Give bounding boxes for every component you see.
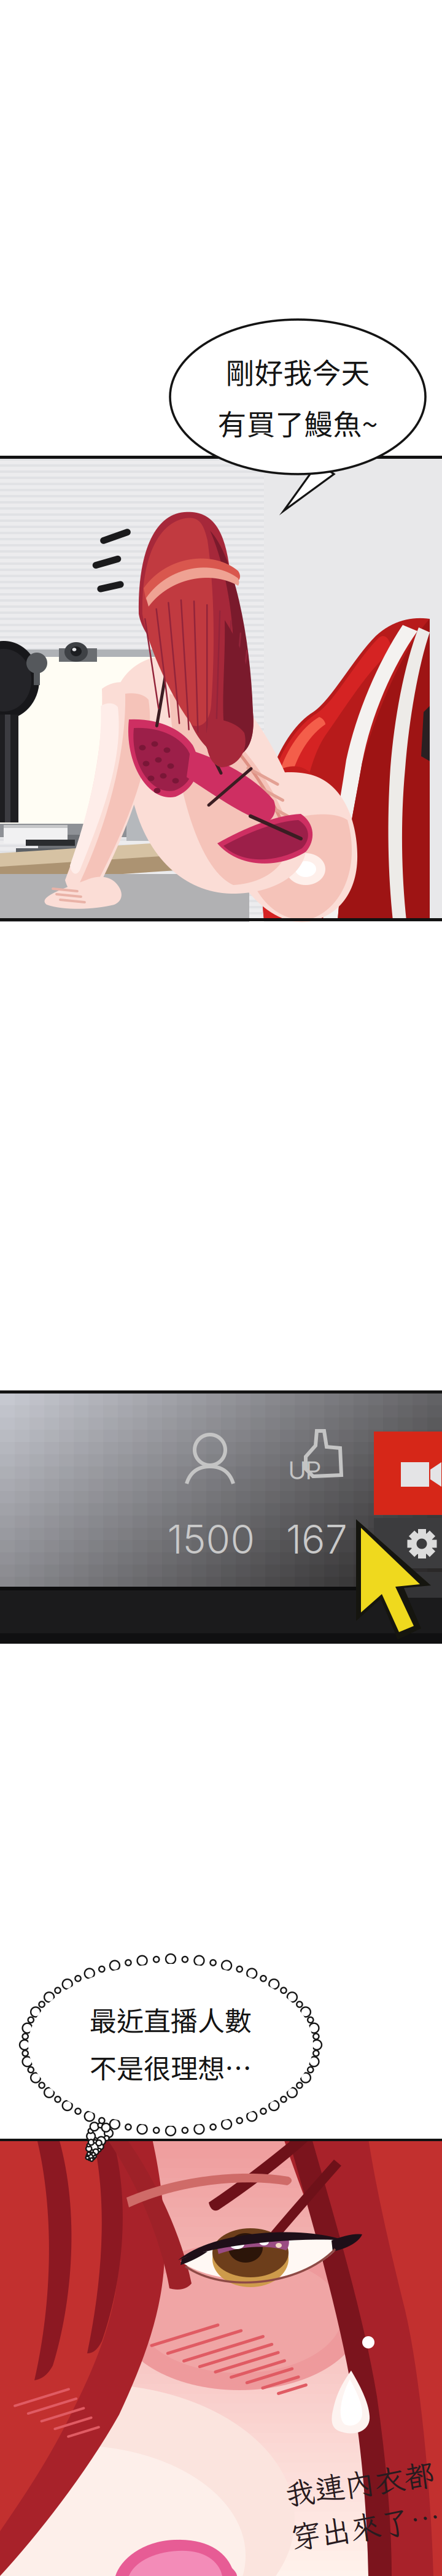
staticText: 不是很理想… [90, 2047, 252, 2086]
staticText: 我連內衣都 [287, 2464, 438, 2504]
staticText: 1500 [167, 1516, 255, 1563]
button[interactable]: Start broadcast [374, 1432, 442, 1515]
staticText: 剛好我今天 [226, 350, 370, 392]
button[interactable]: More [374, 1572, 442, 1598]
staticText: 穿出來了… [287, 2507, 438, 2547]
staticText: 167 [286, 1516, 347, 1563]
staticText: 最近直播人數 [90, 2000, 252, 2039]
button[interactable]: Settings [374, 1518, 442, 1568]
staticText: UP [289, 1455, 321, 1485]
staticText: 有買了鰻魚~ [218, 402, 378, 443]
